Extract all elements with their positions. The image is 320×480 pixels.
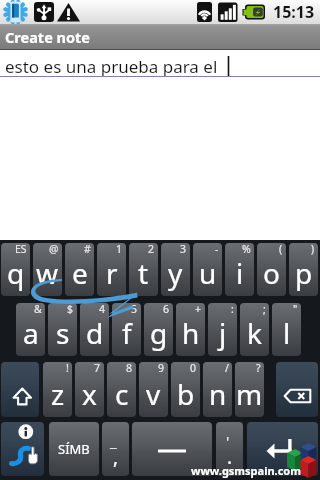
staticText: u [199,254,217,292]
button[interactable]: 2 [129,243,158,296]
staticText: v [146,375,161,413]
staticText: t [138,254,149,292]
staticText: 2 [148,243,155,256]
button[interactable]: " [272,303,301,356]
button[interactable]: + [176,303,205,356]
staticText: www.gsmspain.com [191,463,301,478]
staticText: o [263,254,280,292]
staticText: 7 [94,362,101,375]
button[interactable]: 5 [112,303,141,356]
staticText: ( [279,243,283,256]
staticText: m [236,375,263,413]
staticText: j [219,314,227,352]
button[interactable]: - [193,243,222,296]
staticText: b [177,375,195,413]
button[interactable]: : [208,303,237,356]
staticText: @ [49,243,59,256]
staticText: n [209,375,227,413]
staticText: # [84,243,91,256]
staticText: . [227,444,233,470]
staticText: ES [15,243,27,256]
staticText: - [215,243,219,256]
button[interactable]: 8 [107,362,136,417]
staticText: c [115,375,129,413]
staticText: i [236,254,244,292]
button[interactable]: 0 [171,362,200,417]
staticText: r [106,254,118,292]
button[interactable]: @ [33,243,62,296]
staticText: : [231,303,234,316]
button[interactable]: Info [1,422,44,476]
button[interactable]: 1 [97,243,126,296]
button[interactable]: % [225,243,254,296]
staticText: , [113,444,119,470]
button[interactable]: 4 [80,303,109,356]
button[interactable]: ES [1,243,30,296]
staticText: k [247,314,262,352]
staticText: 1 [116,243,123,256]
staticText: f [122,314,132,352]
staticText: esto es una prueba para el [5,55,218,78]
button[interactable]: $ [48,303,77,356]
staticText: z [51,375,65,413]
staticText: 3 [180,243,187,256]
staticText: a [23,314,39,352]
staticText: ; [263,303,266,316]
button[interactable]: ? [235,362,264,417]
staticText: Create note [5,27,90,47]
staticText: ! [66,362,69,375]
button[interactable]: Enter [247,422,318,476]
staticText: 5 [131,303,138,316]
button[interactable]: / [203,362,232,417]
staticText: p [295,254,313,292]
staticText: + [195,303,202,316]
button[interactable]: ; [240,303,269,356]
button[interactable]: Space [132,422,212,476]
staticText: s [56,314,70,352]
staticText: g [150,314,168,352]
button[interactable]: ) [289,243,318,296]
staticText: q [7,254,25,292]
staticText: " [293,303,298,316]
button[interactable]: 6 [144,303,173,356]
staticText: w [36,254,59,292]
staticText: 0 [190,362,197,375]
staticText: ? [256,362,261,375]
staticText: SÍMB [58,440,90,458]
button[interactable]: SÍMB [49,422,99,476]
button[interactable]: 7 [75,362,104,417]
staticText: ' [226,431,230,451]
button[interactable]: Backspace [276,362,318,417]
staticText: 15:13 [273,1,315,23]
staticText: & [34,303,42,316]
staticText: 8 [126,362,133,375]
staticText: 6 [163,303,170,316]
staticText: / [225,362,229,375]
button[interactable]: ! [43,362,72,417]
button[interactable]: ' [216,422,243,476]
button[interactable]: 3 [161,243,190,296]
staticText: y [168,254,183,292]
staticText: l [283,314,291,352]
staticText: % [242,243,251,256]
button[interactable]: # [65,243,94,296]
staticText: h [182,314,200,352]
staticText: ) [311,243,315,256]
staticText: 9 [158,362,165,375]
button[interactable]: & [16,303,45,356]
button[interactable]: 9 [139,362,168,417]
staticText: _ [110,431,117,451]
button[interactable]: ( [257,243,286,296]
staticText: e [72,254,88,292]
staticText: 4 [99,303,106,316]
button[interactable]: Shift [1,362,39,417]
button[interactable]: _ [102,422,129,476]
staticText: d [86,314,104,352]
staticText: x [82,375,97,413]
staticText: $ [67,303,74,316]
